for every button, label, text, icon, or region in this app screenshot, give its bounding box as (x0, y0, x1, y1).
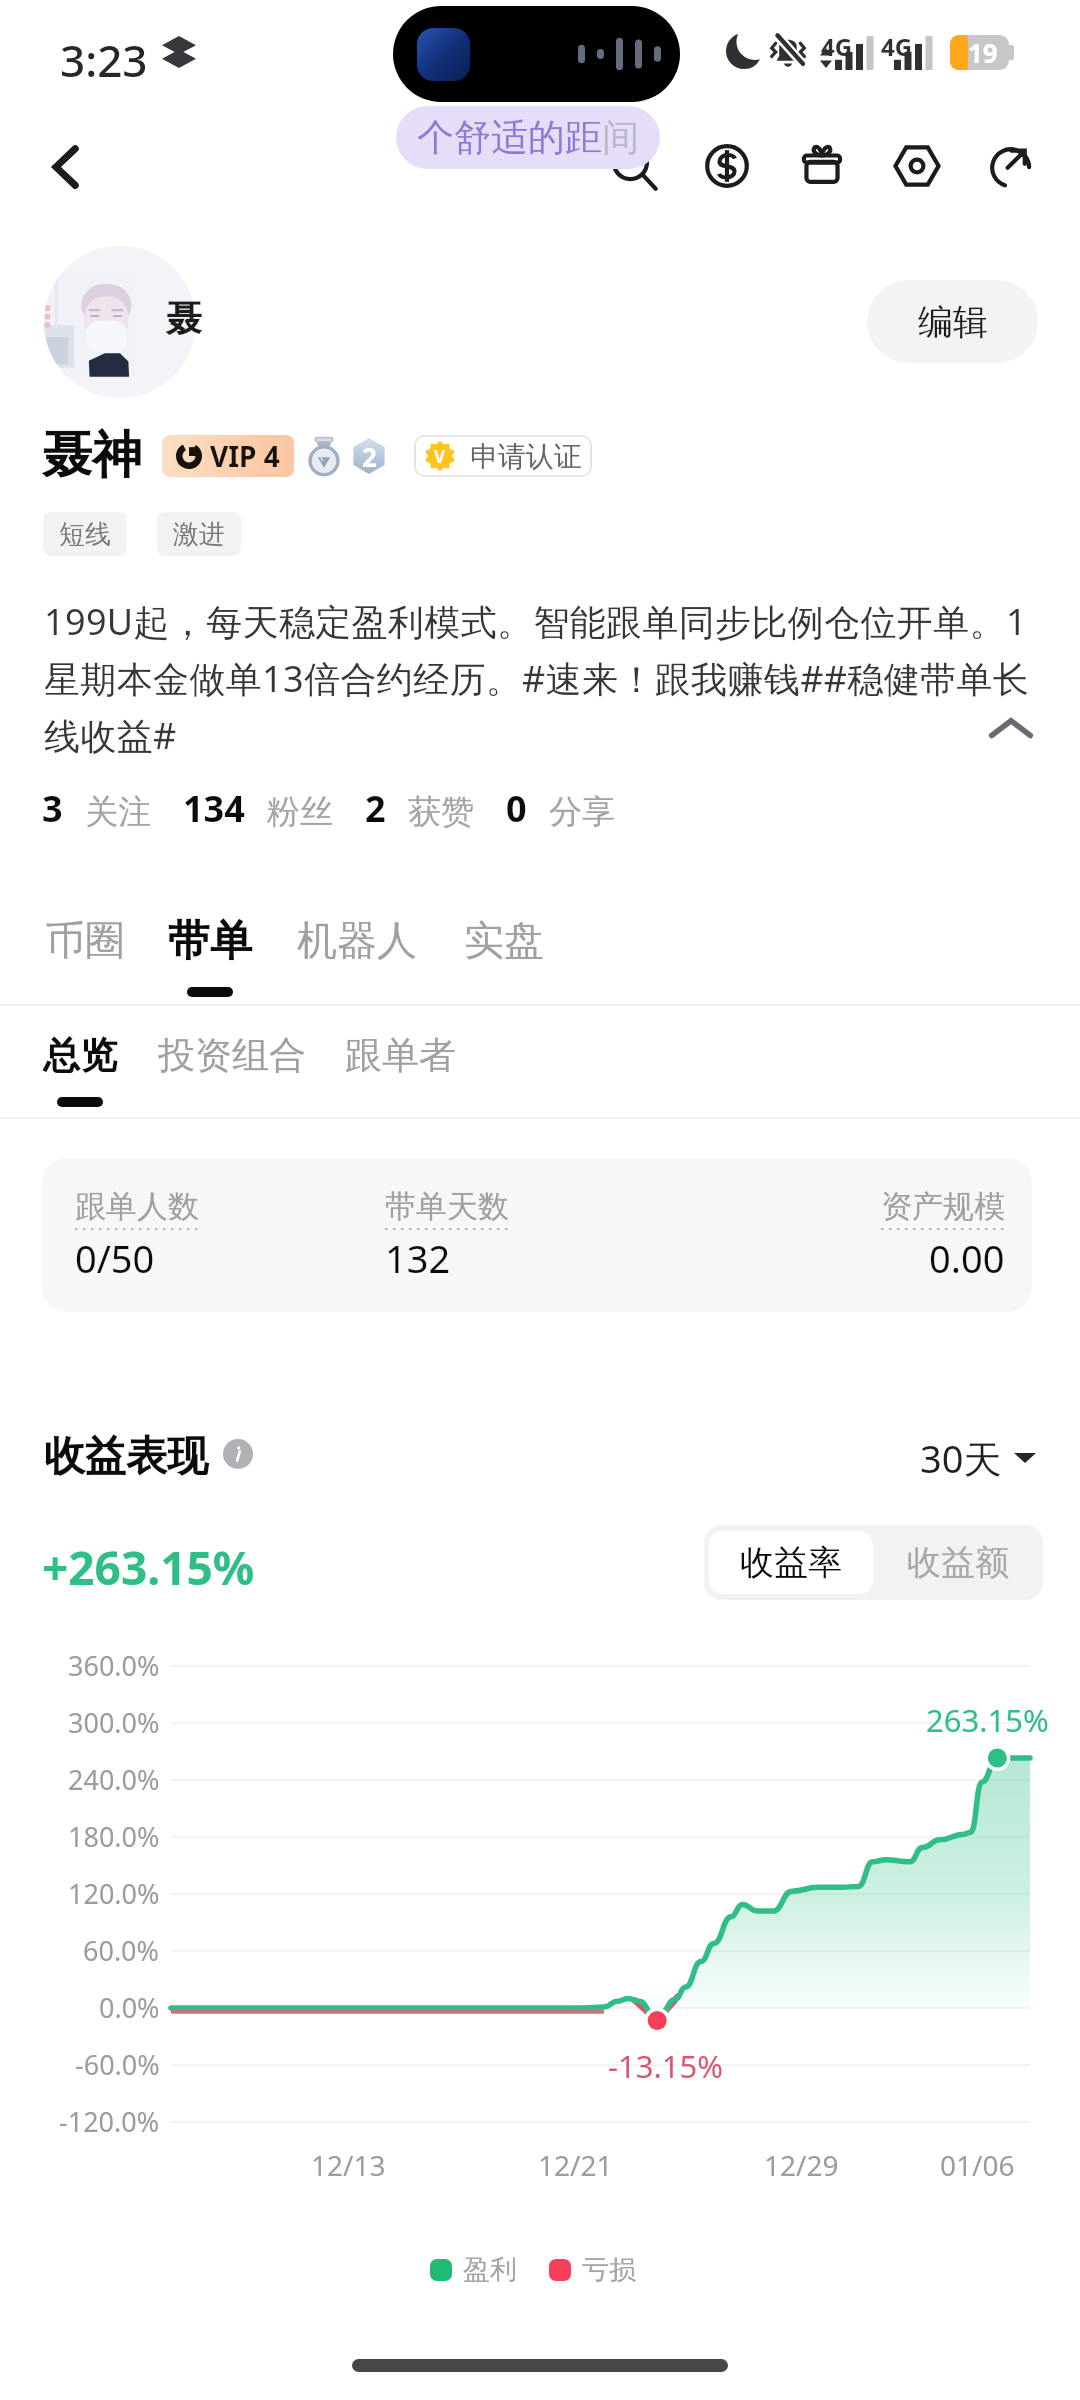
staticText: 资产规模 (881, 1187, 1005, 1226)
staticText: 60.0% (83, 1932, 160, 1969)
staticText: -13.15% (608, 2045, 723, 2087)
staticText: 0 (506, 784, 527, 833)
button[interactable]: 跟单者 (331, 1032, 470, 1128)
button[interactable]: 134 (183, 784, 333, 833)
staticText: 币圈 (45, 915, 125, 965)
staticText: 19 (968, 35, 998, 70)
staticText: V (434, 445, 446, 468)
staticText: VIP 4 (210, 437, 280, 475)
staticText: 跟单者 (345, 1032, 456, 1079)
staticText: 个舒适的距 (417, 114, 602, 161)
staticText: -120.0% (59, 2103, 160, 2140)
staticText: 01/06 (940, 2146, 1015, 2184)
button[interactable]: 激进 (157, 512, 241, 556)
staticText: 间 (602, 114, 639, 161)
staticText: 聂 (166, 296, 202, 341)
staticText: 2 (365, 784, 386, 833)
button[interactable]: 2 (365, 784, 474, 833)
button[interactable]: VIP 4 (162, 435, 294, 477)
staticText: 132 (385, 1232, 451, 1284)
staticText: -60.0% (75, 2046, 160, 2083)
staticText: 180.0% (68, 1818, 160, 1855)
staticText: 12/21 (538, 2146, 613, 2184)
button[interactable]: 收益率 (709, 1531, 873, 1594)
button[interactable]: Info (223, 1439, 253, 1469)
staticText: 投资组合 (158, 1032, 306, 1079)
staticText: 获赞 (408, 791, 474, 833)
staticText: +263.15% (42, 1536, 255, 1599)
staticText: 0/50 (75, 1232, 155, 1284)
staticText: 300.0% (68, 1704, 160, 1741)
staticText: 激进 (173, 518, 225, 551)
staticText: 12/13 (311, 2146, 386, 2184)
staticText: 带单天数 (385, 1187, 509, 1226)
button[interactable]: 总览 (29, 1032, 131, 1128)
button[interactable]: 带单 (154, 915, 266, 1015)
button[interactable]: 收益额 (878, 1531, 1038, 1594)
staticText: 120.0% (68, 1875, 160, 1912)
button[interactable]: 机器人 (283, 915, 431, 1015)
staticText: 申请认证 (470, 439, 582, 474)
button[interactable]: 投资组合 (144, 1032, 320, 1128)
button[interactable]: Back (22, 122, 112, 212)
button[interactable]: 短线 (43, 512, 127, 556)
staticText: 收益额 (907, 1541, 1009, 1584)
staticText: 机器人 (297, 915, 417, 965)
staticText: 240.0% (68, 1761, 160, 1798)
button[interactable]: 3 (42, 784, 151, 833)
staticText: 199U起，每天稳定盈利模式。智能跟单同步比例仓位开单。1星期本金做单13倍合约… (44, 597, 1037, 760)
staticText: 2 (362, 439, 377, 474)
button[interactable]: 币圈 (31, 915, 139, 1015)
staticText: 总览 (43, 1032, 117, 1079)
staticText: 134 (183, 784, 245, 833)
staticText: 360.0% (68, 1647, 160, 1684)
button[interactable] (44, 246, 196, 398)
button[interactable]: Level 2 (351, 438, 387, 474)
staticText: 0.0% (99, 1989, 160, 2026)
staticText: 263.15% (926, 1699, 1049, 1741)
staticText: 亏损 (582, 2253, 636, 2287)
staticText: 分享 (549, 791, 615, 833)
staticText: 4G (881, 30, 913, 63)
button[interactable]: Gift (777, 121, 867, 211)
staticText: 4G (821, 30, 853, 63)
button[interactable]: Collapse (988, 707, 1034, 753)
button[interactable]: Share (967, 121, 1057, 211)
staticText: 收益表现 (44, 1431, 208, 1483)
staticText: 聂神 (42, 424, 142, 487)
button[interactable]: Search (590, 123, 680, 213)
button[interactable]: 0 (506, 784, 615, 833)
button[interactable]: V (414, 435, 592, 477)
button[interactable]: Settings (872, 121, 962, 211)
staticText: 实盘 (464, 915, 544, 965)
staticText: 盈利 (463, 2253, 517, 2287)
staticText: 收益率 (740, 1541, 842, 1584)
staticText: 12/29 (764, 2146, 839, 2184)
staticText: 30天 (920, 1432, 1002, 1484)
button[interactable]: 30天 (920, 1432, 1036, 1484)
staticText: 短线 (59, 518, 111, 551)
button[interactable]: Wallet (682, 121, 772, 211)
button[interactable]: 编辑 (867, 280, 1038, 363)
staticText: 3:23 (60, 30, 148, 90)
staticText: 关注 (85, 791, 151, 833)
staticText: 带单 (168, 915, 252, 968)
staticText: 跟单人数 (75, 1187, 199, 1226)
staticText: 3 (42, 784, 63, 833)
staticText: 0.00 (929, 1232, 1005, 1284)
button[interactable]: Medal (307, 436, 341, 476)
button[interactable]: 实盘 (450, 915, 558, 1015)
staticText: 编辑 (918, 300, 988, 344)
staticText: 粉丝 (267, 791, 333, 833)
